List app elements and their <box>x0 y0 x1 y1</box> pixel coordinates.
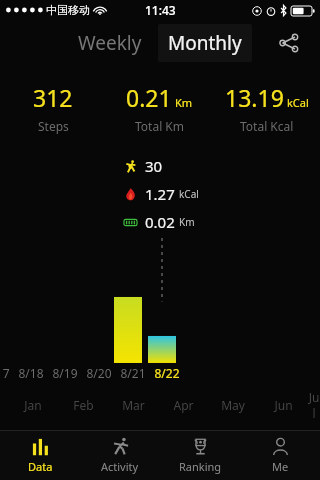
button[interactable]: Monthly <box>158 24 252 62</box>
staticText: Jun <box>274 397 293 413</box>
staticText: 1.27 <box>145 184 175 204</box>
staticText: 0.21 <box>126 82 172 113</box>
staticText: 中国移动 <box>46 3 90 17</box>
button[interactable]: Me <box>240 431 320 480</box>
staticText: Steps <box>38 118 69 134</box>
staticText: May <box>221 397 245 413</box>
staticText: Ranking <box>179 459 222 474</box>
button[interactable]: Share <box>272 26 306 60</box>
staticText: Jan <box>24 397 42 413</box>
staticText: 8/19 <box>52 365 78 381</box>
staticText: 13.19 <box>225 82 284 113</box>
staticText: Total Kcal <box>240 118 294 134</box>
staticText: Mar <box>122 397 145 413</box>
staticText: Weekly <box>78 30 142 56</box>
staticText: Data <box>28 459 53 474</box>
staticText: 8/22 <box>154 365 180 381</box>
staticText: kCal <box>287 95 309 110</box>
staticText: Activity <box>101 459 139 474</box>
staticText: 312 <box>33 82 73 113</box>
button[interactable]: Ranking <box>160 431 240 480</box>
staticText: Me <box>272 459 289 474</box>
staticText: 0.02 <box>145 212 175 232</box>
staticText: Jul <box>308 389 320 421</box>
staticText: 11:43 <box>145 2 176 18</box>
button[interactable]: Weekly <box>68 24 152 62</box>
staticText: 8/20 <box>86 365 112 381</box>
staticText: Monthly <box>168 30 242 56</box>
staticText: Total Km <box>135 118 185 134</box>
button[interactable]: Apr <box>158 397 208 413</box>
staticText: Apr <box>173 397 194 413</box>
staticText: Km <box>179 215 195 229</box>
button[interactable]: Jul <box>308 389 320 421</box>
staticText: 8/17 <box>0 365 10 381</box>
staticText: 8/21 <box>120 365 146 381</box>
button[interactable]: Mar <box>108 397 158 413</box>
staticText: Feb <box>73 397 94 413</box>
staticText: Km <box>175 95 193 110</box>
button[interactable]: Jan <box>8 397 58 413</box>
button[interactable]: Jun <box>258 397 308 413</box>
button[interactable]: Data <box>0 431 80 480</box>
staticText: 8/18 <box>18 365 44 381</box>
button[interactable]: Activity <box>80 431 160 480</box>
staticText: 30 <box>145 156 163 176</box>
button[interactable]: Feb <box>58 397 108 413</box>
button[interactable]: May <box>208 397 258 413</box>
staticText: kCal <box>179 187 199 201</box>
